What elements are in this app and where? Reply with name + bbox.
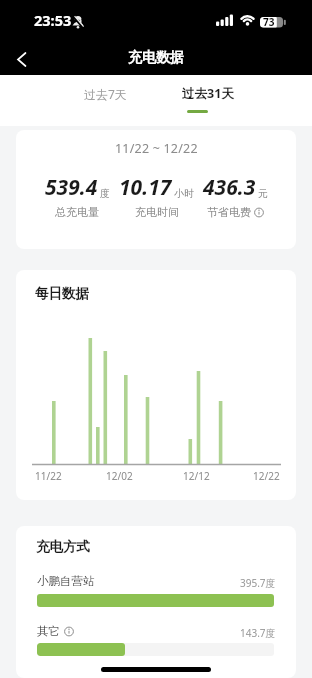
staticText: 元	[258, 187, 268, 200]
button[interactable]	[64, 626, 74, 636]
staticText: 小鹏自营站	[37, 574, 95, 588]
staticText: 12/22	[253, 469, 280, 483]
staticText: 143.7度	[240, 626, 276, 640]
staticText: 436.3	[203, 173, 256, 202]
staticText: 小时	[174, 187, 194, 200]
staticText: 12/02	[106, 469, 133, 483]
button[interactable]: 过去31天	[172, 75, 244, 126]
button[interactable]	[8, 46, 38, 72]
button[interactable]	[37, 594, 274, 607]
staticText: 23:53	[34, 10, 72, 30]
staticText: 11/22 ~ 12/22	[115, 140, 198, 157]
staticText: 10.17	[119, 173, 172, 202]
staticText: 充电数据	[128, 49, 184, 67]
staticText: 395.7度	[240, 576, 276, 590]
button[interactable]	[37, 643, 125, 656]
staticText: 12/12	[183, 469, 210, 483]
staticText: 539.4	[45, 173, 98, 202]
staticText: 度	[100, 187, 110, 200]
staticText: 每日数据	[35, 285, 89, 302]
button[interactable]	[254, 207, 264, 217]
staticText: 其它	[37, 624, 60, 638]
staticText: 充电方式	[36, 538, 90, 555]
staticText: 节省电费	[207, 205, 251, 219]
staticText: 总充电量	[55, 205, 99, 219]
button[interactable]: 过去7天	[73, 75, 137, 126]
staticText: 73	[263, 15, 275, 29]
staticText: 过去31天	[182, 85, 234, 102]
staticText: 过去7天	[84, 86, 127, 102]
staticText: 11/22	[35, 469, 62, 483]
staticText: 充电时间	[135, 205, 179, 219]
